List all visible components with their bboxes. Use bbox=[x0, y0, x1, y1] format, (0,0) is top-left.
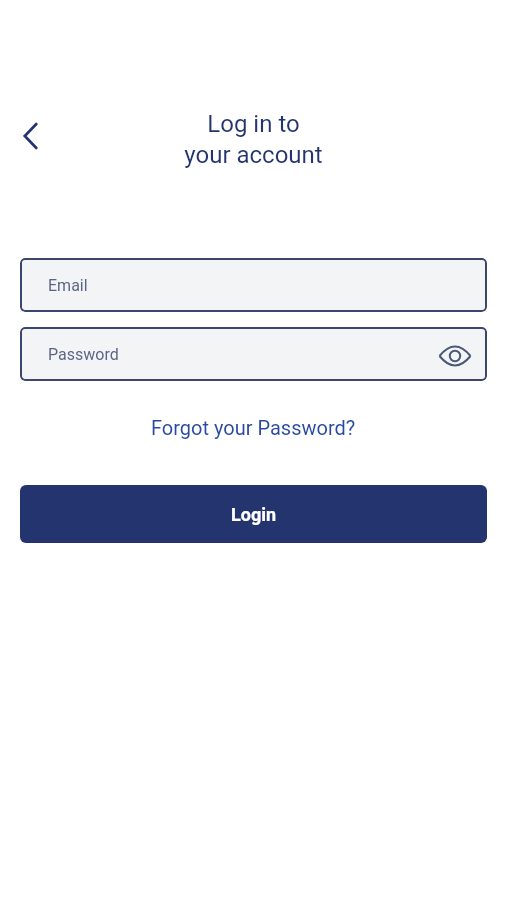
staticText: Log in to your account bbox=[0, 110, 507, 169]
button[interactable]: Forgot your Password? bbox=[143, 413, 364, 442]
staticText: Login bbox=[231, 504, 277, 525]
button[interactable]: Password bbox=[20, 327, 487, 381]
button[interactable]: Email bbox=[20, 258, 487, 312]
staticText: Forgot your Password? bbox=[151, 416, 356, 439]
button[interactable]: Login bbox=[20, 485, 487, 543]
button[interactable] bbox=[12, 117, 48, 153]
staticText: Email bbox=[48, 276, 88, 295]
staticText: Password bbox=[48, 345, 119, 364]
